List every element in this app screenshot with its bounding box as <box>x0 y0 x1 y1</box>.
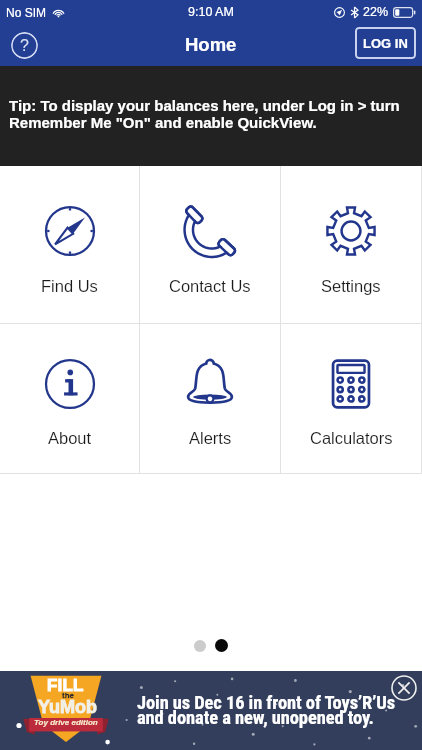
staticText: and donate a new, unopened toy. <box>137 707 374 729</box>
button[interactable]: Help <box>11 32 38 59</box>
staticText: About <box>48 429 92 447</box>
staticText: Toy drive edition <box>34 718 98 727</box>
staticText: Join us Dec 16 in front of Toys’R’Us <box>137 692 396 714</box>
staticText: Calculators <box>310 429 393 447</box>
staticText: the <box>62 691 74 700</box>
button[interactable]: Page 2 <box>215 639 228 652</box>
staticText: Alerts <box>189 429 232 447</box>
button[interactable]: Close ad <box>390 674 418 702</box>
staticText: Contact Us <box>169 277 251 295</box>
staticText: ? <box>20 37 29 55</box>
staticText: Find Us <box>41 277 98 295</box>
staticText: 9:10 AM <box>188 5 234 19</box>
staticText: 22% <box>363 5 389 19</box>
button[interactable]: About <box>0 324 139 473</box>
button[interactable]: FILL <box>0 671 422 750</box>
button[interactable]: LOG IN <box>355 27 416 59</box>
staticText: LOG IN <box>363 36 408 51</box>
staticText: Tip: To display your balances here, unde… <box>9 97 400 114</box>
staticText: Home <box>185 34 237 55</box>
button[interactable]: Find Us <box>0 166 139 323</box>
button[interactable]: Settings <box>281 166 421 323</box>
button[interactable]: Alerts <box>140 324 280 473</box>
button[interactable]: Calculators <box>281 324 421 473</box>
button[interactable]: Page 1 <box>194 640 206 652</box>
staticText: FILL <box>47 676 84 695</box>
button[interactable]: Contact Us <box>140 166 280 323</box>
staticText: Remember Me "On" and enable QuickView. <box>9 114 317 131</box>
staticText: No SIM <box>6 6 47 19</box>
staticText: YuMob <box>38 697 97 717</box>
staticText: Settings <box>321 277 381 295</box>
